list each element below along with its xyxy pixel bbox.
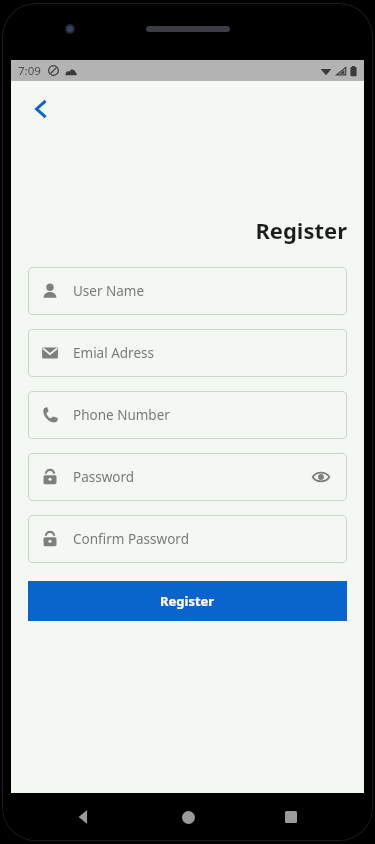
staticText: Register [160, 592, 215, 610]
button[interactable]: Show password [308, 464, 334, 490]
button[interactable]: Register [28, 581, 347, 621]
staticText: 7:09 [18, 63, 41, 79]
staticText: Emial Adress [73, 344, 154, 362]
staticText: Confirm Password [73, 530, 189, 548]
button[interactable]: Back [62, 795, 106, 839]
button[interactable]: Phone Number [28, 391, 347, 439]
button[interactable]: Recent apps [269, 795, 313, 839]
staticText: Register [11, 215, 347, 245]
button[interactable]: Confirm Password [28, 515, 347, 563]
button[interactable]: Emial Adress [28, 329, 347, 377]
staticText: Password [73, 468, 135, 486]
button[interactable]: Back [19, 87, 63, 131]
button[interactable]: Password [28, 453, 347, 501]
staticText: User Name [73, 282, 145, 300]
button[interactable]: User Name [28, 267, 347, 315]
staticText: Phone Number [73, 406, 170, 424]
button[interactable]: Home [166, 795, 210, 839]
